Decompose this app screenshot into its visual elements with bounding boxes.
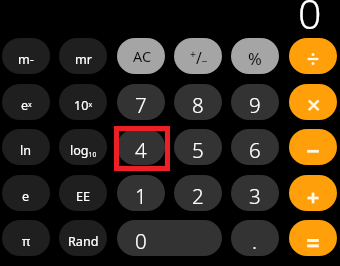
staticText: e: [22, 188, 30, 205]
button[interactable]: Equals: [289, 220, 337, 256]
button[interactable]: e to the x: [2, 84, 50, 120]
button[interactable]: 5: [174, 129, 222, 165]
button[interactable]: 7: [117, 84, 165, 120]
button[interactable]: e: [2, 175, 50, 211]
staticText: 0: [298, 0, 322, 41]
staticText: 4: [135, 136, 147, 164]
button[interactable]: 8: [174, 84, 222, 120]
button[interactable]: ten to the x: [59, 84, 107, 120]
button[interactable]: EE: [59, 175, 107, 211]
staticText: 10x: [74, 97, 93, 114]
button[interactable]: All clear: [117, 38, 165, 74]
staticText: 5: [192, 136, 204, 164]
staticText: .: [252, 227, 258, 255]
button[interactable]: 6: [231, 129, 279, 165]
button[interactable]: 1: [117, 175, 165, 211]
button[interactable]: Subtract: [289, 129, 337, 165]
button[interactable]: log base ten: [59, 129, 107, 165]
staticText: 1: [135, 182, 147, 210]
button[interactable]: Plus minus: [174, 38, 222, 74]
staticText: π: [22, 233, 31, 250]
button[interactable]: 9: [231, 84, 279, 120]
staticText: 3: [249, 182, 261, 210]
button[interactable]: pi: [2, 220, 50, 256]
button[interactable]: .: [231, 220, 279, 256]
staticText: ln: [20, 142, 32, 159]
button[interactable]: 2: [174, 175, 222, 211]
button[interactable]: 4: [117, 129, 165, 165]
staticText: +/−: [190, 47, 208, 68]
button[interactable]: 0: [117, 220, 222, 256]
staticText: 2: [192, 182, 204, 210]
button[interactable]: Divide: [289, 38, 337, 74]
button[interactable]: Percent: [231, 38, 279, 74]
staticText: AC: [133, 47, 152, 67]
staticText: 9: [249, 91, 261, 119]
staticText: mr: [75, 51, 92, 68]
staticText: EE: [76, 188, 91, 205]
button[interactable]: natural log: [2, 129, 50, 165]
staticText: 0: [135, 227, 147, 255]
staticText: log10: [70, 142, 97, 159]
staticText: m-: [18, 51, 34, 68]
button[interactable]: 3: [231, 175, 279, 211]
staticText: 7: [135, 91, 147, 119]
staticText: 6: [249, 136, 261, 164]
button[interactable]: Multiply: [289, 84, 337, 120]
button[interactable]: memory recall: [59, 38, 107, 74]
staticText: ex: [21, 97, 32, 114]
button[interactable]: random: [59, 220, 107, 256]
staticText: %: [248, 47, 262, 70]
staticText: 8: [192, 91, 204, 119]
staticText: Rand: [68, 233, 99, 250]
button[interactable]: Add: [289, 175, 337, 211]
button[interactable]: m minus: [2, 38, 50, 74]
